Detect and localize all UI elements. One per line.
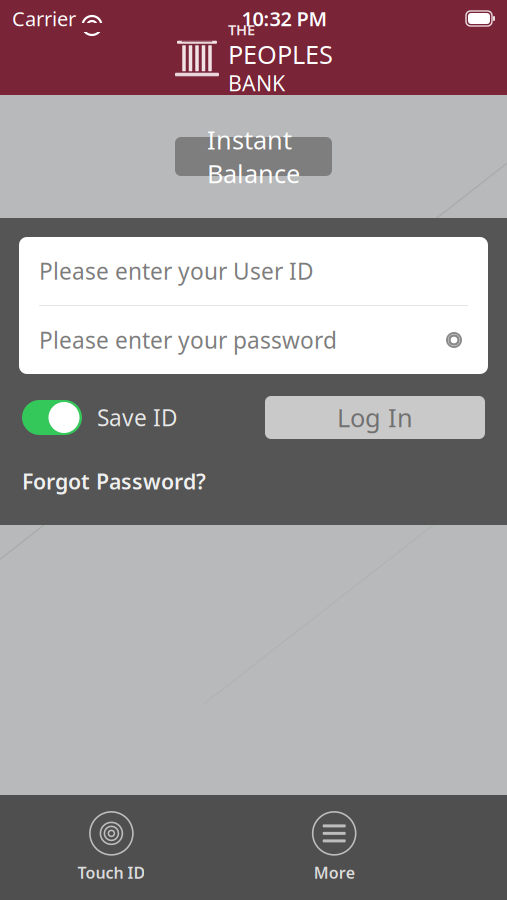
staticText: BANK [228, 69, 285, 97]
button[interactable]: Instant Balance [175, 137, 332, 176]
button[interactable]: Save ID [22, 400, 178, 435]
staticText: Please enter your password [39, 325, 337, 355]
staticText: THE [228, 20, 255, 39]
staticText: Log In [337, 401, 413, 434]
staticText: Save ID [97, 402, 178, 432]
button[interactable]: Touch ID [61, 811, 161, 883]
staticText: More [314, 862, 355, 883]
button[interactable]: Log In [265, 396, 485, 439]
staticText: Instant Balance [207, 123, 300, 190]
staticText: Touch ID [77, 862, 145, 883]
staticText: Carrier [12, 5, 76, 32]
staticText: PEOPLES [228, 37, 333, 71]
staticText: Please enter your User ID [39, 256, 314, 286]
button[interactable]: Please enter your User ID [19, 237, 488, 305]
button[interactable]: Please enter your password [19, 306, 488, 374]
button[interactable]: Forgot Password? [22, 467, 206, 495]
staticText: 10:32 PM [241, 5, 327, 32]
button[interactable]: More [284, 811, 384, 883]
staticText: Forgot Password? [22, 467, 206, 495]
